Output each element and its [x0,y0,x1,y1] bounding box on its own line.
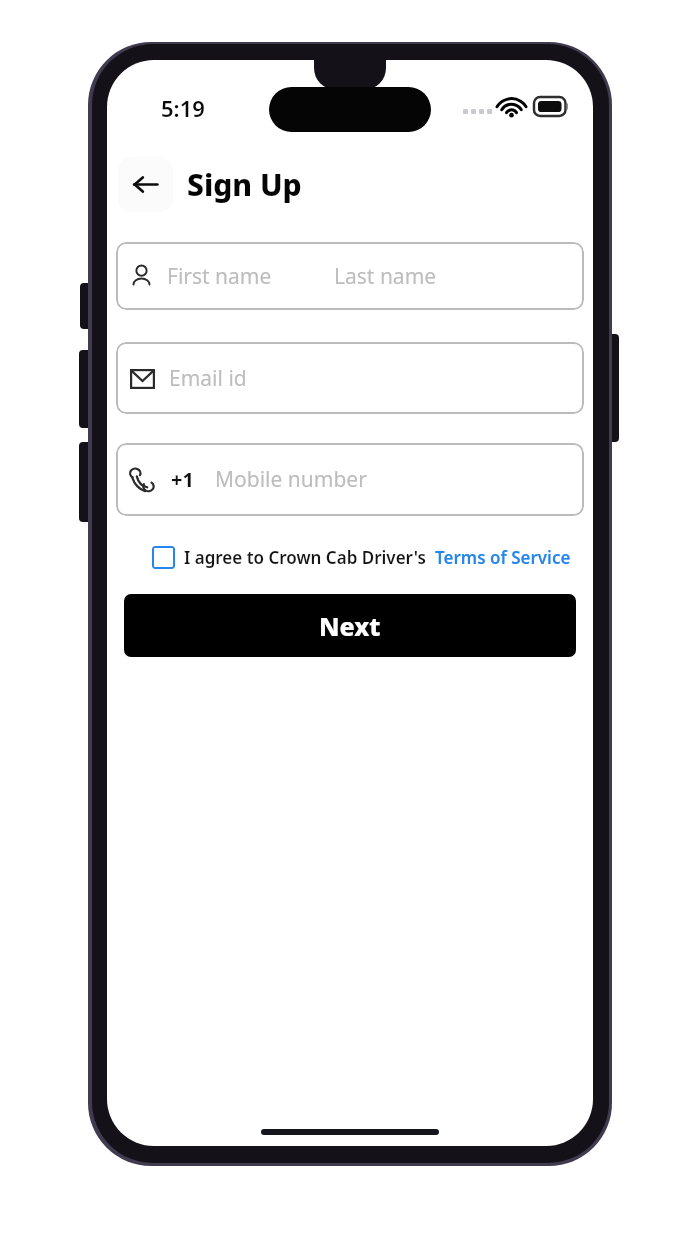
staticText: +1 [171,466,194,493]
staticText: I agree to Crown Cab Driver's [184,546,426,569]
button[interactable]: I agree to terms checkbox [148,542,178,572]
button[interactable]: Email id [116,342,584,414]
button[interactable]: Back [118,157,173,212]
button[interactable]: Next [124,594,576,657]
button[interactable]: First name [116,242,584,310]
staticText: Terms of Service [435,546,571,569]
staticText: 5:19 [161,93,205,123]
button[interactable]: Terms of Service [435,546,571,569]
button[interactable]: +1 [116,443,584,516]
staticText: First name [167,262,272,291]
staticText: Next [319,609,381,643]
staticText: Mobile number [215,465,367,494]
staticText: Sign Up [187,164,302,205]
staticText: Last name [334,262,437,291]
staticText: Email id [169,364,247,393]
